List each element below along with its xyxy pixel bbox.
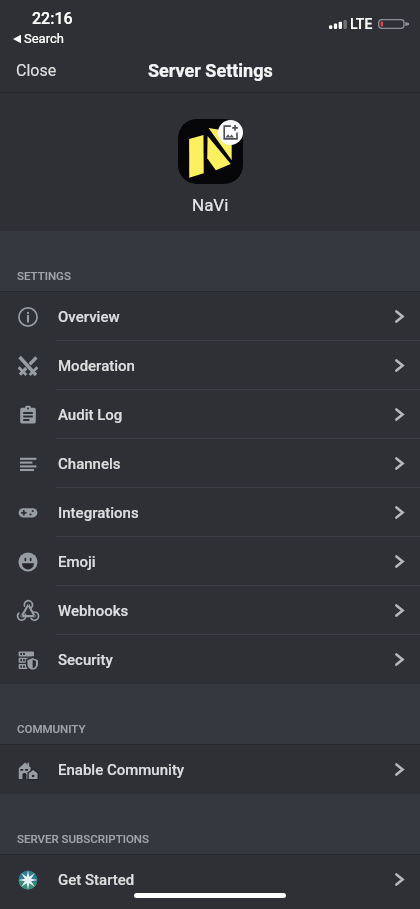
button[interactable]: Security (0, 635, 420, 684)
button[interactable]: Close (0, 49, 73, 92)
staticText: NaVi (192, 195, 229, 215)
button[interactable]: Get Started (0, 855, 420, 904)
button[interactable]: Channels (0, 439, 420, 488)
staticText: SERVER SUBSCRIPTIONS (17, 832, 149, 845)
staticText: Search (24, 31, 64, 46)
staticText: Moderation (58, 357, 135, 375)
staticText: Channels (58, 455, 121, 473)
button[interactable]: Search (13, 31, 64, 46)
button[interactable]: Emoji (0, 537, 420, 586)
staticText: Overview (58, 308, 120, 326)
button[interactable]: Overview (0, 292, 420, 341)
staticText: Emoji (58, 553, 96, 571)
button[interactable]: Audit Log (0, 390, 420, 439)
button[interactable]: Integrations (0, 488, 420, 537)
staticText: LTE (350, 16, 373, 32)
staticText: Server Settings (148, 60, 273, 81)
staticText: COMMUNITY (17, 722, 86, 735)
button[interactable]: Change server icon (218, 120, 243, 145)
staticText: Webhooks (58, 602, 129, 620)
staticText: Audit Log (58, 406, 123, 424)
staticText: Security (58, 651, 113, 669)
staticText: SETTINGS (17, 269, 71, 282)
button[interactable]: Webhooks (0, 586, 420, 635)
staticText: Integrations (58, 504, 139, 522)
button[interactable]: Moderation (0, 341, 420, 390)
staticText: Get Started (58, 871, 135, 889)
button[interactable]: Server icon (178, 119, 243, 184)
staticText: 22:16 (32, 9, 73, 28)
button[interactable]: Enable Community (0, 745, 420, 794)
staticText: Enable Community (58, 761, 185, 779)
staticText: Close (16, 61, 57, 80)
